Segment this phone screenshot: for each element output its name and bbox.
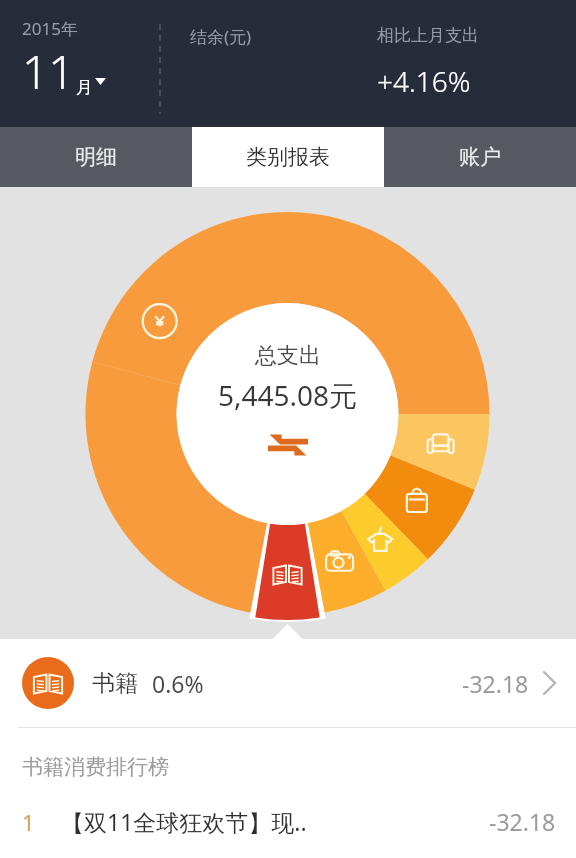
- staticText: 【双11全球狂欢节】现..: [61, 806, 307, 837]
- staticText: 1: [22, 807, 35, 837]
- staticText: 类别报表: [246, 144, 330, 170]
- staticText: 明细: [75, 144, 117, 170]
- staticText: 书籍消费排行榜: [22, 754, 169, 780]
- staticText: -32.18: [462, 668, 529, 699]
- button[interactable]: 2015年: [22, 17, 114, 109]
- staticText: 账户: [459, 144, 501, 170]
- staticText: 相比上月支出: [377, 25, 479, 46]
- button[interactable]: 明细: [0, 127, 192, 187]
- staticText: 2015年: [22, 17, 78, 40]
- staticText: 书籍: [92, 669, 138, 698]
- button[interactable]: 类别报表: [192, 127, 384, 187]
- staticText: 5,445.08元: [218, 376, 358, 414]
- staticText: 总支出: [255, 342, 321, 370]
- staticText: +4.16%: [377, 62, 471, 100]
- button[interactable]: Switch chart: [266, 430, 310, 460]
- staticText: 0.6%: [152, 668, 204, 699]
- button[interactable]: 账户: [384, 127, 576, 187]
- staticText: 11: [22, 40, 75, 103]
- staticText: -32.18: [489, 806, 556, 837]
- button[interactable]: 书籍: [0, 639, 576, 727]
- staticText: 结余(元): [190, 25, 252, 48]
- button[interactable]: 1: [0, 806, 576, 837]
- staticText: 月: [76, 77, 93, 98]
